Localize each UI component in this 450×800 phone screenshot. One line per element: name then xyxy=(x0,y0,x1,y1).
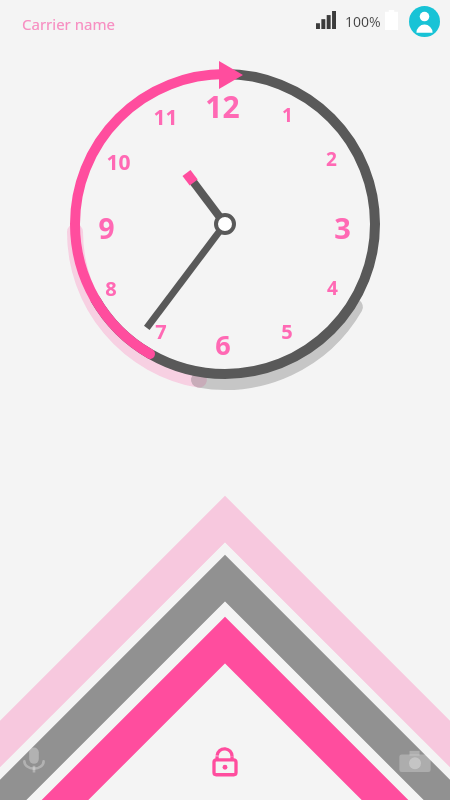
staticText: 7 xyxy=(155,318,167,345)
button[interactable]: User account xyxy=(409,6,440,37)
staticText: 100% xyxy=(345,12,381,31)
staticText: 2 xyxy=(326,146,337,172)
staticText: 1 xyxy=(282,102,293,128)
staticText: Carrier name xyxy=(22,14,115,34)
staticText: 5 xyxy=(281,318,293,345)
staticText: 10 xyxy=(106,148,131,177)
button[interactable]: Unlock xyxy=(203,740,247,784)
staticText: 11 xyxy=(153,103,178,132)
staticText: 6 xyxy=(215,326,231,363)
other: Signal strength xyxy=(316,11,336,29)
staticText: 8 xyxy=(105,275,117,302)
button[interactable]: Camera xyxy=(392,738,438,784)
staticText: 3 xyxy=(334,208,351,247)
button[interactable]: Voice assistant xyxy=(10,736,58,784)
staticText: 9 xyxy=(98,209,115,247)
staticText: 4 xyxy=(327,275,338,301)
staticText: 12 xyxy=(205,86,240,127)
